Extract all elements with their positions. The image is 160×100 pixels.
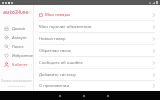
button[interactable]: Обратная связь <box>34 45 160 56</box>
staticText: Поиск <box>12 44 24 49</box>
staticText: Условия использования <box>1 79 32 83</box>
button[interactable]: Аккаунт <box>0 33 33 42</box>
button[interactable]: Кабинет <box>0 60 33 69</box>
button[interactable]: О приложении <box>34 81 160 91</box>
button[interactable]: Добавить систему <box>34 69 160 80</box>
staticText: Избранное <box>12 53 33 58</box>
staticText: auto24.ee 2024 <box>8 84 26 87</box>
staticText: О приложении <box>39 83 69 89</box>
button[interactable]: Новый товар <box>34 33 160 44</box>
button[interactable]: Home <box>81 93 86 98</box>
staticText: Новый товар <box>39 36 66 42</box>
button[interactable]: Избранное <box>0 51 33 60</box>
button[interactable]: Поиск <box>0 42 33 51</box>
staticText: Домой <box>12 26 25 31</box>
staticText: Кабинет <box>12 62 28 67</box>
button[interactable]: Мои товары <box>34 9 160 20</box>
staticText: Сообщить об ошибке <box>39 60 83 66</box>
button[interactable]: Back <box>57 93 62 98</box>
staticText: Мои горячие объявления <box>39 24 92 30</box>
staticText: Аккаунт <box>12 35 27 40</box>
button[interactable]: Recent apps <box>105 93 110 98</box>
button[interactable]: Мои горячие объявления <box>34 21 160 32</box>
button[interactable]: Домой <box>0 24 33 33</box>
staticText: auto24.ee <box>3 8 29 15</box>
staticText: Обратная связь <box>39 48 72 54</box>
button[interactable]: auto24.ee logo <box>3 8 29 15</box>
button[interactable]: Сообщить об ошибке <box>34 57 160 68</box>
staticText: Добавить систему <box>39 72 76 78</box>
staticText: Мои товары <box>45 12 71 18</box>
